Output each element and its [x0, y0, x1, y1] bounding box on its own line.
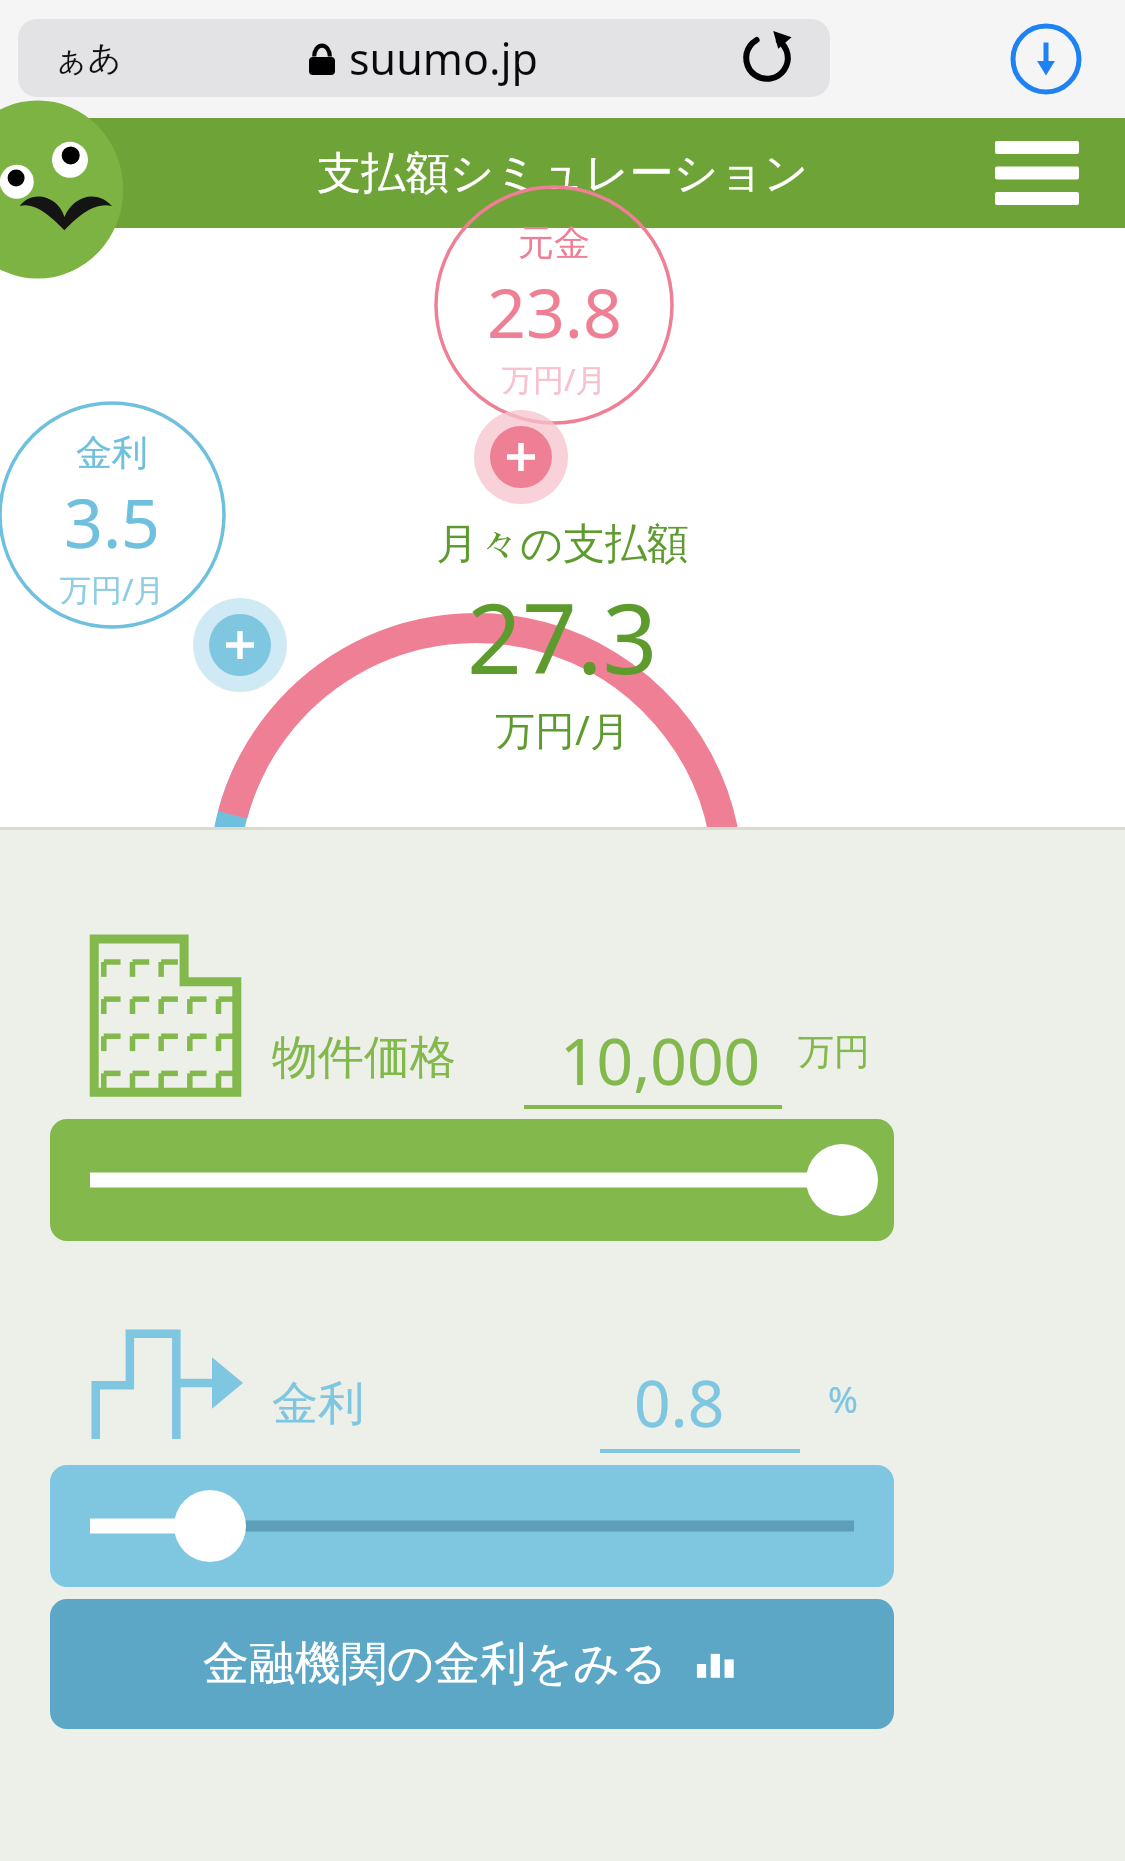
button[interactable]: Reload	[736, 27, 798, 89]
staticText: 万円/月	[495, 702, 630, 757]
button[interactable]: Downloads	[1007, 20, 1085, 98]
staticText: 3.5	[64, 475, 161, 568]
staticText: 万円/月	[60, 568, 165, 610]
staticText: 金利	[76, 430, 148, 475]
staticText: 万円/月	[502, 358, 607, 400]
staticText: suumo.jp	[349, 29, 539, 88]
button[interactable]: 金融機関の金利をみる	[50, 1599, 894, 1729]
staticText: 23.8	[487, 265, 622, 358]
staticText: ぁあ	[54, 37, 122, 79]
staticText: 金利	[272, 1375, 364, 1433]
staticText: 物件価格	[272, 1029, 456, 1087]
staticText: 万円	[798, 1029, 870, 1074]
staticText: 金融機関の金利をみる	[203, 1635, 668, 1693]
staticText: 0.8	[634, 1359, 725, 1446]
button[interactable]: ぁあ	[18, 19, 830, 97]
staticText: 支払額シミュレーション	[317, 146, 809, 201]
button[interactable]: 金利スライダー	[50, 1465, 894, 1587]
staticText: %	[828, 1375, 858, 1424]
button[interactable]: 物件価格スライダー	[50, 1119, 894, 1241]
staticText: 元金	[518, 220, 590, 265]
button[interactable]: Menu	[991, 137, 1083, 209]
staticText: 月々の支払額	[436, 518, 689, 571]
staticText: 27.3	[467, 571, 658, 702]
staticText: 10,000	[560, 1017, 761, 1104]
